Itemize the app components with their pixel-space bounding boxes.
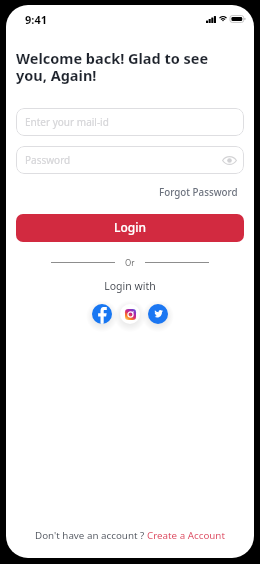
button[interactable]: Create a Account — [147, 529, 225, 542]
button[interactable]: Password — [16, 146, 244, 174]
staticText: Welcome back! Glad to see you, Again! — [16, 48, 216, 85]
staticText: 9:41 — [25, 12, 47, 27]
staticText: Password — [25, 153, 71, 167]
staticText: Or — [125, 257, 135, 268]
staticText: Don't have an account ? — [35, 529, 147, 542]
button[interactable]: Show password — [222, 155, 237, 166]
button[interactable]: Login with Facebook — [92, 304, 112, 324]
button[interactable]: Login with Twitter — [148, 304, 168, 324]
staticText: Enter your mail-id — [25, 115, 109, 129]
button[interactable]: Login — [16, 214, 244, 242]
staticText: Forgot Password — [159, 186, 238, 199]
button[interactable]: Enter your mail-id — [16, 108, 244, 136]
button[interactable]: Forgot Password — [155, 183, 242, 202]
staticText: Login with — [6, 279, 254, 293]
staticText: Login — [114, 219, 146, 235]
button[interactable]: Login with Instagram — [120, 304, 140, 324]
staticText: Create a Account — [147, 529, 225, 542]
